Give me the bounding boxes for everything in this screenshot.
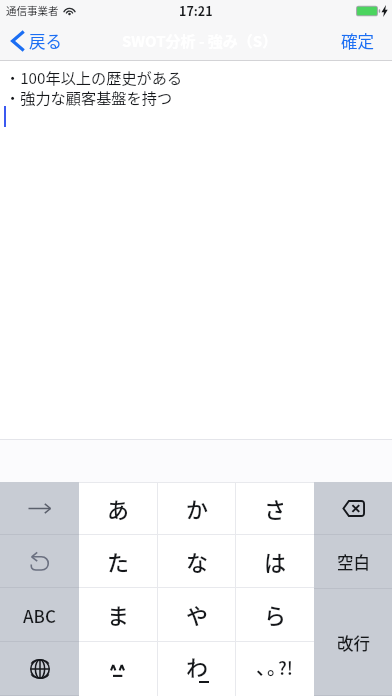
button[interactable]: 戻る xyxy=(0,24,72,58)
staticText: 通信事業者 xyxy=(6,3,59,18)
staticText: ?! xyxy=(278,654,294,680)
button[interactable]: た xyxy=(79,535,158,588)
staticText: 戻る xyxy=(29,29,62,53)
staticText: 確定 xyxy=(341,29,374,53)
button[interactable]: Switch keyboard xyxy=(0,642,79,696)
button[interactable]: あ xyxy=(79,482,158,535)
staticText: 、 xyxy=(256,653,267,681)
staticText: わ xyxy=(186,650,209,682)
staticText: ・100年以上の歴史がある xyxy=(5,66,183,88)
button[interactable]: 空白 xyxy=(314,535,392,589)
button[interactable]: や xyxy=(158,588,236,642)
staticText: 空白 xyxy=(337,550,370,574)
staticText: や xyxy=(186,598,209,630)
staticText: SWOT分析 - 強み（S） xyxy=(122,30,278,52)
button[interactable]: ま xyxy=(79,588,158,642)
staticText: 。 xyxy=(267,653,278,681)
button[interactable]: ABC xyxy=(0,588,79,642)
button[interactable]: わ xyxy=(158,642,236,696)
staticText: あ xyxy=(107,492,130,524)
button[interactable]: さ xyxy=(236,482,314,535)
staticText: ABC xyxy=(23,603,56,628)
button[interactable]: 、 xyxy=(236,642,314,696)
button[interactable]: ら xyxy=(236,588,314,642)
button[interactable]: Delete xyxy=(314,482,392,535)
staticText: 17:21 xyxy=(179,1,213,19)
staticText: か xyxy=(186,492,209,524)
button[interactable]: 確定 xyxy=(327,22,392,60)
staticText: 改行 xyxy=(337,631,370,655)
button[interactable]: は xyxy=(236,535,314,588)
staticText: さ xyxy=(264,492,287,524)
staticText: ・強力な顧客基盤を持つ xyxy=(5,86,173,108)
staticText: ま xyxy=(107,598,130,630)
button[interactable]: Move cursor right xyxy=(0,482,79,535)
button[interactable]: 改行 xyxy=(314,589,392,696)
staticText: た xyxy=(107,545,130,577)
staticText: な xyxy=(186,545,209,577)
staticText: は xyxy=(264,545,287,577)
button[interactable]: か xyxy=(158,482,236,535)
button[interactable]: Undo xyxy=(0,535,79,588)
button[interactable]: な xyxy=(158,535,236,588)
button[interactable] xyxy=(79,642,158,696)
staticText: ら xyxy=(264,598,287,630)
